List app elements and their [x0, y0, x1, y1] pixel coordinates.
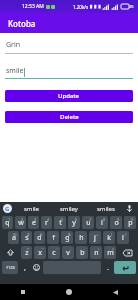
button[interactable]: w	[15, 216, 26, 229]
staticText: d	[37, 233, 42, 243]
staticText: +	[96, 232, 99, 237]
staticText: t	[59, 218, 62, 228]
staticText: 6	[75, 217, 78, 222]
button[interactable]: n	[90, 246, 102, 259]
button[interactable]: o	[110, 216, 122, 229]
staticText: 3	[34, 217, 37, 222]
button[interactable]: c	[48, 246, 60, 259]
button[interactable]: h	[75, 231, 87, 244]
staticText: !	[98, 247, 100, 252]
staticText: 1.20k/s	[73, 4, 89, 10]
staticText: 0	[131, 217, 134, 222]
button[interactable]	[2, 246, 19, 259]
button[interactable]: Grin	[5, 40, 133, 54]
staticText: ?123	[6, 265, 15, 270]
button[interactable]: b	[76, 246, 88, 259]
staticText: ,	[24, 263, 26, 273]
staticText: v	[66, 248, 70, 258]
staticText: #	[27, 232, 30, 237]
staticText: c	[52, 248, 56, 258]
button[interactable]: r	[41, 216, 52, 229]
staticText: *	[27, 247, 30, 252]
staticText: $	[40, 232, 43, 237]
button[interactable]: Back	[92, 284, 138, 300]
button[interactable]: g	[61, 231, 73, 244]
button[interactable]: Google	[3, 204, 12, 213]
button[interactable]: q	[2, 216, 13, 229]
staticText: smile	[24, 205, 39, 213]
staticText: smiley	[60, 205, 78, 213]
staticText: n	[94, 248, 99, 258]
button[interactable]	[114, 261, 136, 274]
button[interactable]	[31, 261, 41, 274]
button[interactable]: smile	[5, 66, 133, 79]
staticText: k	[107, 233, 111, 243]
staticText: o	[114, 218, 119, 228]
staticText: e	[32, 218, 36, 228]
button[interactable]: p	[124, 216, 136, 229]
staticText: x	[38, 248, 42, 258]
staticText: ;	[84, 247, 86, 252]
button[interactable]: u	[82, 216, 94, 229]
staticText: g	[65, 233, 70, 243]
staticText: f	[52, 233, 55, 243]
button[interactable]: d	[34, 231, 45, 244]
button[interactable]	[118, 246, 136, 259]
staticText: u	[86, 218, 91, 228]
staticText: h	[79, 233, 84, 243]
button[interactable]: s	[21, 231, 32, 244]
staticText: Grin	[6, 40, 21, 50]
button[interactable]: Delete	[5, 111, 133, 123]
button[interactable]: ?123	[2, 261, 18, 274]
button[interactable]: a	[8, 231, 19, 244]
staticText: z	[25, 248, 29, 258]
button[interactable]: t	[54, 216, 66, 229]
staticText: (	[111, 232, 113, 237]
staticText: "	[42, 247, 44, 252]
button[interactable]: y	[68, 216, 80, 229]
staticText: )	[125, 232, 127, 237]
staticText: q	[5, 218, 10, 228]
button[interactable]: l	[117, 231, 129, 244]
button[interactable]: Voice input	[124, 202, 135, 215]
staticText: a	[12, 233, 16, 243]
button[interactable]: z	[21, 246, 32, 259]
button[interactable]: Update	[5, 90, 133, 102]
button[interactable]: smiles	[87, 202, 124, 215]
staticText: 9	[117, 217, 120, 222]
button[interactable]: m	[104, 246, 116, 259]
button[interactable]: j	[89, 231, 101, 244]
button[interactable]: ,	[20, 261, 29, 274]
button[interactable]: v	[62, 246, 74, 259]
staticText: s	[25, 233, 29, 243]
staticText: 1	[8, 217, 11, 222]
button[interactable]: e	[28, 216, 39, 229]
button[interactable]: x	[34, 246, 46, 259]
staticText: ?	[112, 247, 114, 252]
staticText: @	[13, 232, 17, 237]
staticText: Kotoba	[8, 18, 36, 29]
button[interactable]: .	[103, 261, 112, 274]
button[interactable]: smiley	[50, 202, 87, 215]
staticText: :	[70, 247, 72, 252]
button[interactable]: k	[103, 231, 115, 244]
staticText: w	[18, 218, 24, 228]
staticText: G	[5, 205, 10, 213]
button[interactable]: i	[96, 216, 108, 229]
staticText: i	[101, 218, 103, 228]
staticText: 12:53 AM	[22, 3, 44, 10]
staticText: &	[68, 232, 71, 237]
staticText: 2	[21, 217, 24, 222]
button[interactable]: Home	[46, 284, 92, 300]
staticText: smiles	[97, 205, 115, 213]
button[interactable]: f	[47, 231, 59, 244]
button[interactable]: smile	[12, 202, 50, 215]
button[interactable]: Recent apps	[0, 284, 46, 300]
staticText: y	[72, 218, 76, 228]
staticText: l	[122, 233, 124, 243]
staticText: 7	[89, 217, 92, 222]
staticText: .	[107, 263, 109, 273]
staticText: _	[55, 232, 57, 237]
